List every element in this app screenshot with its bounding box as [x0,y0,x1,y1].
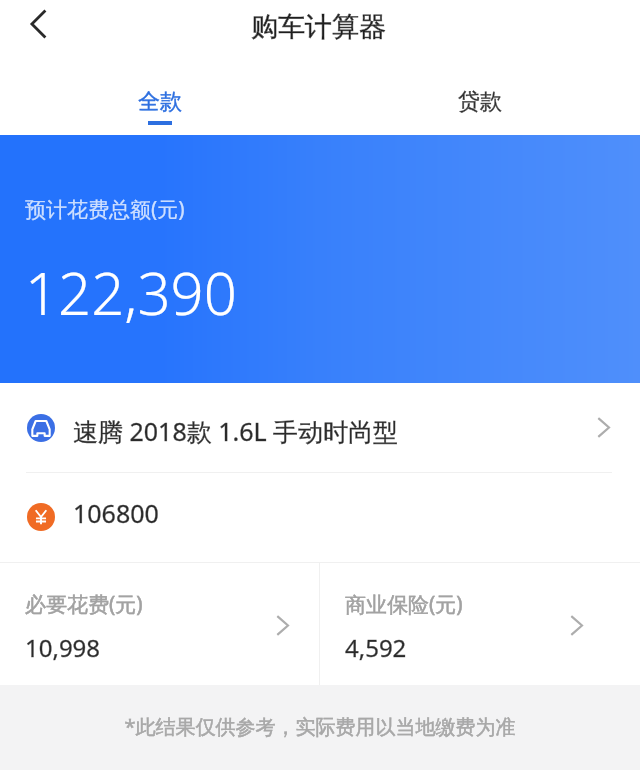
button[interactable]: 速腾 2018款 1.6L 手动时尚型 [0,383,640,472]
staticText: 106800 [73,496,159,530]
staticText: *此结果仅供参考，实际费用以当地缴费为准 [124,713,516,740]
staticText: 10,998 [25,631,101,664]
staticText: 贷款 [458,88,502,116]
other: 商业保险(元) [570,615,583,636]
staticText: 商业保险(元) [345,590,463,619]
button[interactable]: 商业保险(元) [320,563,640,685]
staticText: 全款 [138,88,182,116]
staticText: 4,592 [345,631,407,664]
staticText: 必要花费(元) [25,590,143,619]
staticText: 购车计算器 [251,10,386,44]
staticText: 106800 [73,496,159,530]
staticText: 购车计算器 [251,10,386,44]
staticText: 122,390 [25,253,237,332]
other: 必要花费(元) [276,615,289,636]
button[interactable]: 贷款 [320,72,640,135]
staticText: 速腾 2018款 1.6L 手动时尚型 [73,414,399,448]
staticText: 商业保险(元) [345,590,463,619]
button[interactable]: 106800 [0,473,640,562]
staticText: 全款 [138,88,182,116]
button[interactable]: Back [11,0,65,51]
staticText: 速腾 2018款 1.6L 手动时尚型 [73,414,399,448]
button[interactable]: 必要花费(元) [0,563,319,685]
button[interactable]: 全款 [0,72,320,135]
staticText: 贷款 [458,88,502,116]
staticText: 预计花费总额(元) [25,195,185,224]
other: Choose car model [597,417,610,438]
staticText: 必要花费(元) [25,590,143,619]
staticText: *此结果仅供参考，实际费用以当地缴费为准 [124,713,516,740]
staticText: 4,592 [345,631,407,664]
staticText: 10,998 [25,631,101,664]
